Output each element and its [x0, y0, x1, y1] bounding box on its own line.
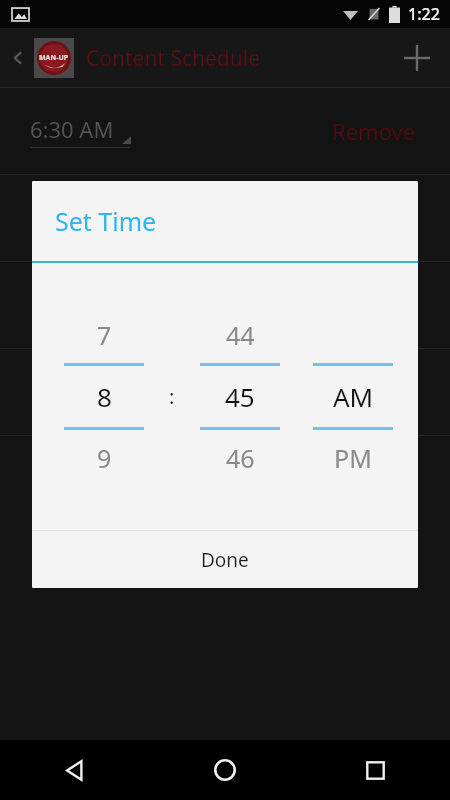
staticText: 46 — [226, 441, 255, 475]
button[interactable]: AM — [310, 263, 396, 530]
button[interactable]: Home — [150, 740, 300, 800]
staticText: 9 — [97, 441, 112, 475]
button[interactable]: Done — [32, 531, 418, 588]
button[interactable]: Navigate up — [4, 44, 32, 72]
staticText: PM — [334, 441, 372, 475]
staticText: 45 — [225, 379, 255, 414]
staticText: Set Time — [55, 204, 157, 238]
button[interactable]: 44 — [190, 263, 290, 530]
staticText: Done — [201, 547, 249, 573]
staticText: Remove — [332, 116, 416, 146]
staticText: : — [169, 383, 175, 410]
button[interactable]: Recent apps — [300, 740, 450, 800]
button[interactable]: Back — [0, 740, 150, 800]
staticText: AM — [333, 379, 374, 414]
button[interactable]: Add — [394, 35, 440, 81]
staticText: MAN-UP — [39, 53, 69, 63]
staticText: 7 — [97, 318, 112, 352]
staticText: 8 — [97, 379, 112, 414]
staticText: 6:30 AM — [30, 114, 114, 144]
button[interactable]: Remove — [328, 112, 420, 150]
button[interactable]: 7 — [54, 263, 154, 530]
staticText: 1:22 — [408, 3, 440, 25]
staticText: Content Schedule — [86, 44, 394, 73]
staticText: 44 — [226, 318, 255, 352]
